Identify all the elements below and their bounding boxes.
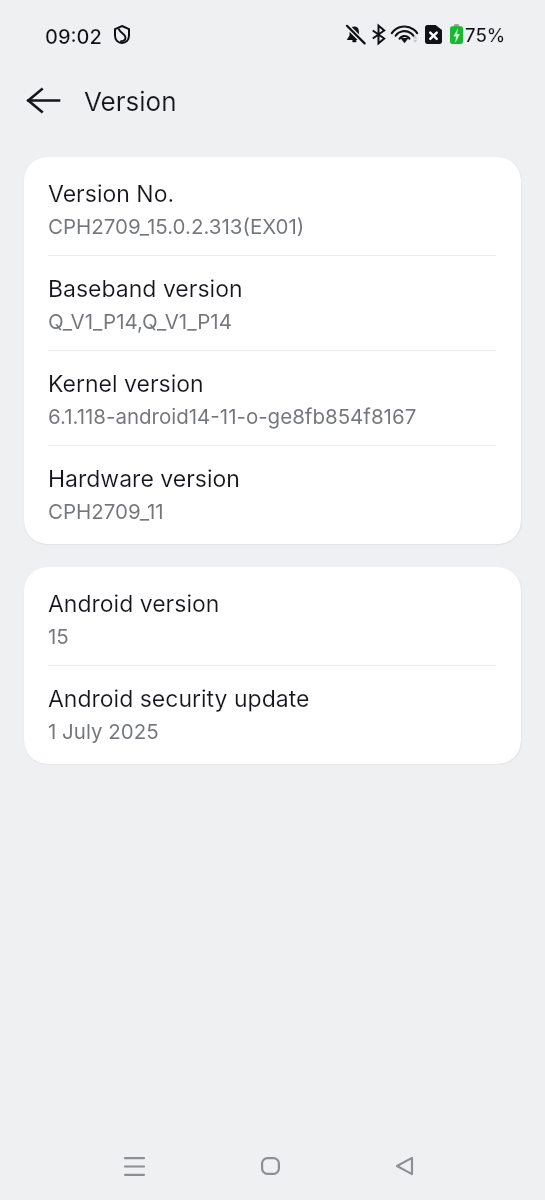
- button[interactable]: Kernel version: [24, 351, 521, 445]
- button[interactable]: Baseband version: [24, 256, 521, 350]
- button[interactable]: Android security update: [24, 666, 521, 760]
- staticText: 6.1.118-android14-11-o-ge8fb854f8167: [48, 404, 417, 429]
- staticText: 15: [48, 624, 69, 649]
- staticText: CPH2709_11: [48, 499, 164, 524]
- button[interactable]: Recent apps: [99, 1131, 169, 1200]
- button[interactable]: Hardware version: [24, 446, 521, 540]
- button[interactable]: Back: [369, 1131, 439, 1200]
- staticText: Android security update: [48, 685, 310, 713]
- staticText: 75%: [465, 24, 506, 46]
- staticText: Android version: [48, 590, 220, 618]
- staticText: Q_V1_P14,Q_V1_P14: [48, 309, 232, 334]
- staticText: Baseband version: [48, 275, 243, 303]
- staticText: 1 July 2025: [48, 719, 159, 744]
- button[interactable]: Version No.: [24, 161, 521, 255]
- staticText: CPH2709_15.0.2.313(EX01): [48, 214, 305, 239]
- staticText: 09:02: [45, 25, 102, 49]
- button[interactable]: Android version: [24, 571, 521, 665]
- staticText: Version No.: [48, 180, 175, 208]
- staticText: Version: [84, 86, 177, 117]
- staticText: Kernel version: [48, 370, 204, 398]
- staticText: Hardware version: [48, 465, 240, 493]
- button[interactable]: Back: [13, 70, 73, 130]
- button[interactable]: Home: [235, 1131, 305, 1200]
